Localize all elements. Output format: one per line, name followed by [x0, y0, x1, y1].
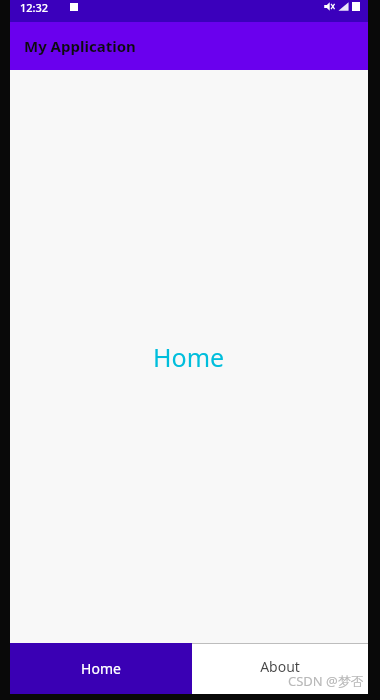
button[interactable]: About [192, 643, 368, 694]
staticText: My Application [24, 36, 136, 56]
staticText: Home [153, 340, 225, 374]
staticText: 12:32 [20, 0, 49, 15]
staticText: Home [81, 659, 121, 678]
button[interactable]: Home [10, 643, 192, 694]
staticText: About [260, 657, 300, 676]
staticText: CSDN @梦否 [288, 672, 364, 690]
